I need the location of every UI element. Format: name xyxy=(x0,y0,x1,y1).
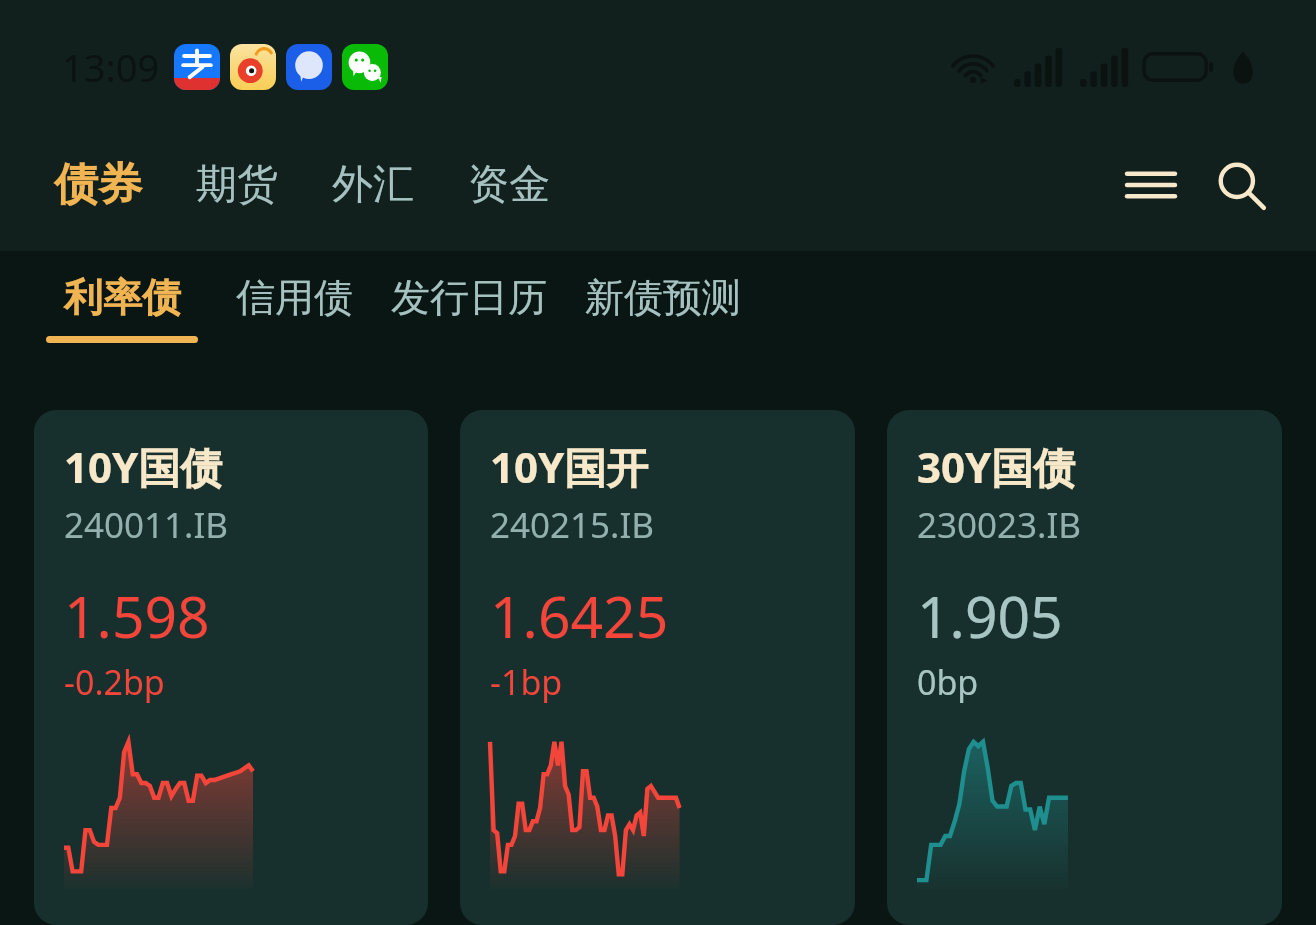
button[interactable]: 资金 xyxy=(460,149,558,221)
staticText: 240011.IB xyxy=(64,501,229,549)
staticText: -1bp xyxy=(490,659,563,705)
staticText: 信用债 xyxy=(236,273,353,322)
button[interactable]: 新债预测 xyxy=(579,273,747,336)
button[interactable]: 30Y国债 xyxy=(887,410,1282,925)
staticText: 资金 xyxy=(468,159,550,211)
button[interactable]: 期货 xyxy=(188,149,286,221)
staticText: 0bp xyxy=(917,659,979,705)
staticText: 10Y国开 xyxy=(490,438,649,495)
staticText: 外汇 xyxy=(332,159,414,211)
staticText: 期货 xyxy=(196,159,278,211)
button[interactable]: 利率债 xyxy=(40,273,204,343)
staticText: 债券 xyxy=(54,157,142,212)
button[interactable]: 发行日历 xyxy=(385,273,553,336)
staticText: 13:09 xyxy=(62,41,160,93)
button[interactable]: Search xyxy=(1202,146,1280,224)
button[interactable]: 外汇 xyxy=(324,149,422,221)
staticText: 发行日历 xyxy=(391,273,547,322)
button[interactable]: Menu xyxy=(1112,146,1190,224)
button[interactable]: 10Y国债 xyxy=(34,410,428,925)
staticText: 30Y国债 xyxy=(917,438,1076,495)
staticText: 新债预测 xyxy=(585,273,741,322)
staticText: 240215.IB xyxy=(490,501,655,549)
staticText: 利率债 xyxy=(64,273,181,322)
staticText: 1.905 xyxy=(917,577,1063,655)
staticText: 230023.IB xyxy=(917,501,1082,549)
staticText: 10Y国债 xyxy=(64,438,223,495)
staticText: 1.598 xyxy=(64,577,210,655)
staticText: -0.2bp xyxy=(64,659,165,705)
button[interactable]: 债券 xyxy=(46,147,150,222)
button[interactable]: 10Y国开 xyxy=(460,410,855,925)
staticText: 1.6425 xyxy=(490,577,669,655)
button[interactable]: 信用债 xyxy=(230,273,359,336)
